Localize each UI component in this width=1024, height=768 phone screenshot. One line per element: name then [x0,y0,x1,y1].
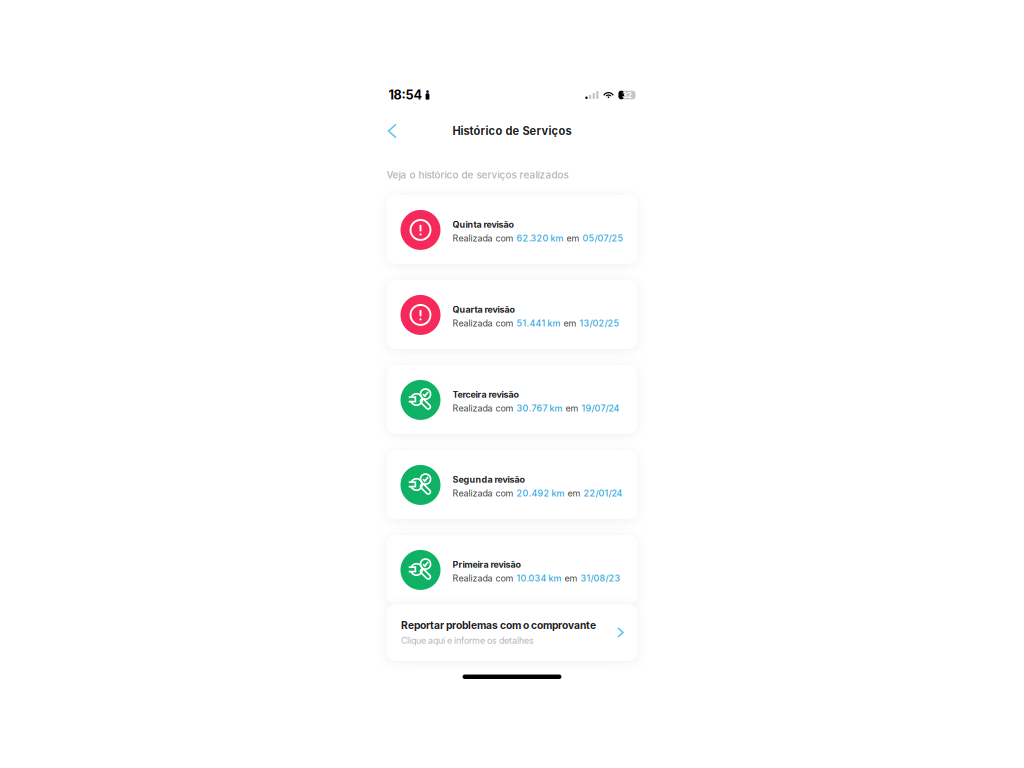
staticText: 13/02/25 [579,318,619,329]
staticText: Realizada com [452,403,516,414]
staticText: Realizada com [452,233,516,244]
staticText: 62.320 km [516,233,563,244]
staticText: Realizada com [452,318,516,329]
staticText: Quarta revisão [452,304,514,315]
staticText: em [562,403,581,414]
staticText: Segunda revisão [452,474,524,485]
staticText: Veja o histórico de serviços realizados [386,169,568,181]
staticText: em [564,488,583,499]
button[interactable]: Quarta revisão [386,280,637,349]
button[interactable]: Back [386,115,405,147]
button[interactable]: Segunda revisão [386,450,637,519]
staticText: Terceira revisão [452,389,518,400]
staticText: 19/07/24 [581,403,619,414]
staticText: Realizada com [452,573,516,584]
staticText: Quinta revisão [452,219,513,230]
staticText: Realizada com [452,488,516,499]
staticText: Clique aqui e informe os detalhes [401,635,534,646]
staticText: em [561,573,580,584]
staticText: 18:54 [388,87,422,103]
staticText: Reportar problemas com o comprovante [401,619,596,631]
staticText: 51.441 km [516,318,560,329]
button[interactable]: Terceira revisão [386,365,637,434]
staticText: 10.034 km [516,573,561,584]
staticText: 32 [622,90,632,100]
button[interactable]: Reportar problemas com o comprovante [386,604,637,661]
staticText: Histórico de Serviços [452,124,571,138]
button[interactable]: Primeira revisão [386,535,637,604]
staticText: 05/07/25 [582,233,623,244]
staticText: em [560,318,579,329]
staticText: Primeira revisão [452,559,520,570]
staticText: 30.767 km [516,403,562,414]
button[interactable]: Quinta revisão [386,195,637,264]
staticText: 20.492 km [516,488,564,499]
staticText: em [563,233,582,244]
staticText: 31/08/23 [580,573,620,584]
staticText: 22/01/24 [583,488,622,499]
